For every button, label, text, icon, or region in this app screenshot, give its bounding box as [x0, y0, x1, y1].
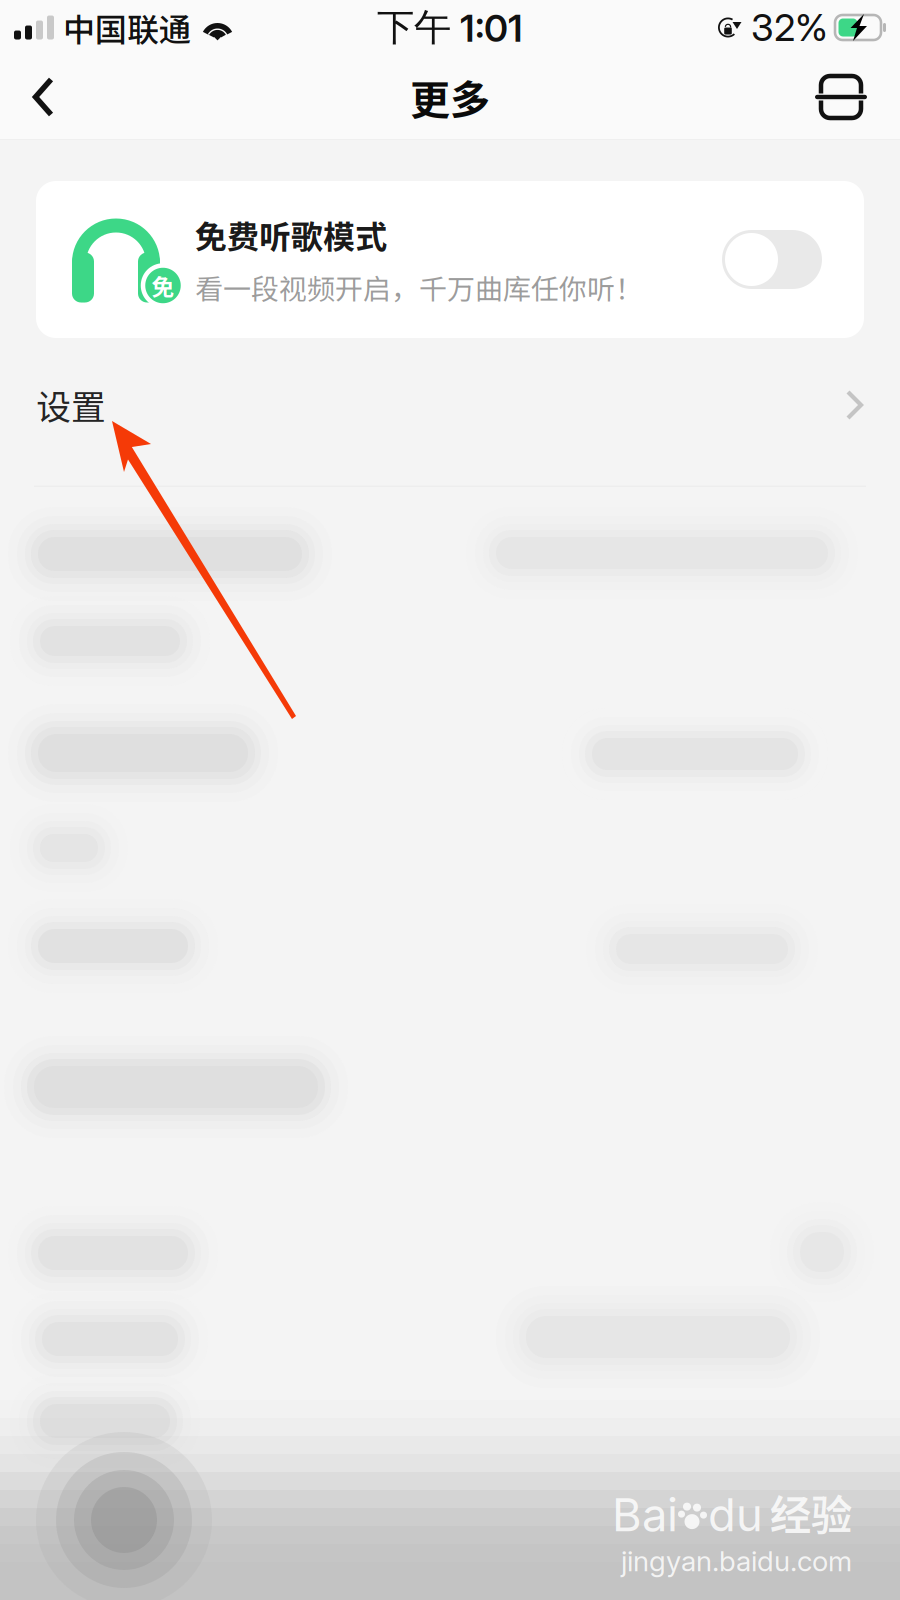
- button[interactable]: 免: [36, 181, 864, 338]
- button[interactable]: 返回: [32, 55, 128, 139]
- staticText: 经验: [770, 1482, 852, 1542]
- staticText: Bai: [612, 1487, 678, 1542]
- staticText: 中国联通: [63, 4, 191, 51]
- button[interactable]: 扫一扫: [772, 55, 868, 139]
- staticText: du: [708, 1487, 763, 1542]
- staticText: 更多: [410, 68, 490, 126]
- button[interactable]: 设置: [0, 363, 900, 487]
- staticText: 32%: [751, 5, 828, 50]
- staticText: jingyan.baidu.com: [621, 1544, 852, 1578]
- staticText: 下午 1:01: [377, 4, 523, 51]
- staticText: 设置: [36, 380, 106, 430]
- staticText: 免: [151, 269, 174, 302]
- staticText: 看一段视频开启，千万曲库任你听！: [195, 267, 643, 307]
- staticText: 免费听歌模式: [195, 212, 387, 258]
